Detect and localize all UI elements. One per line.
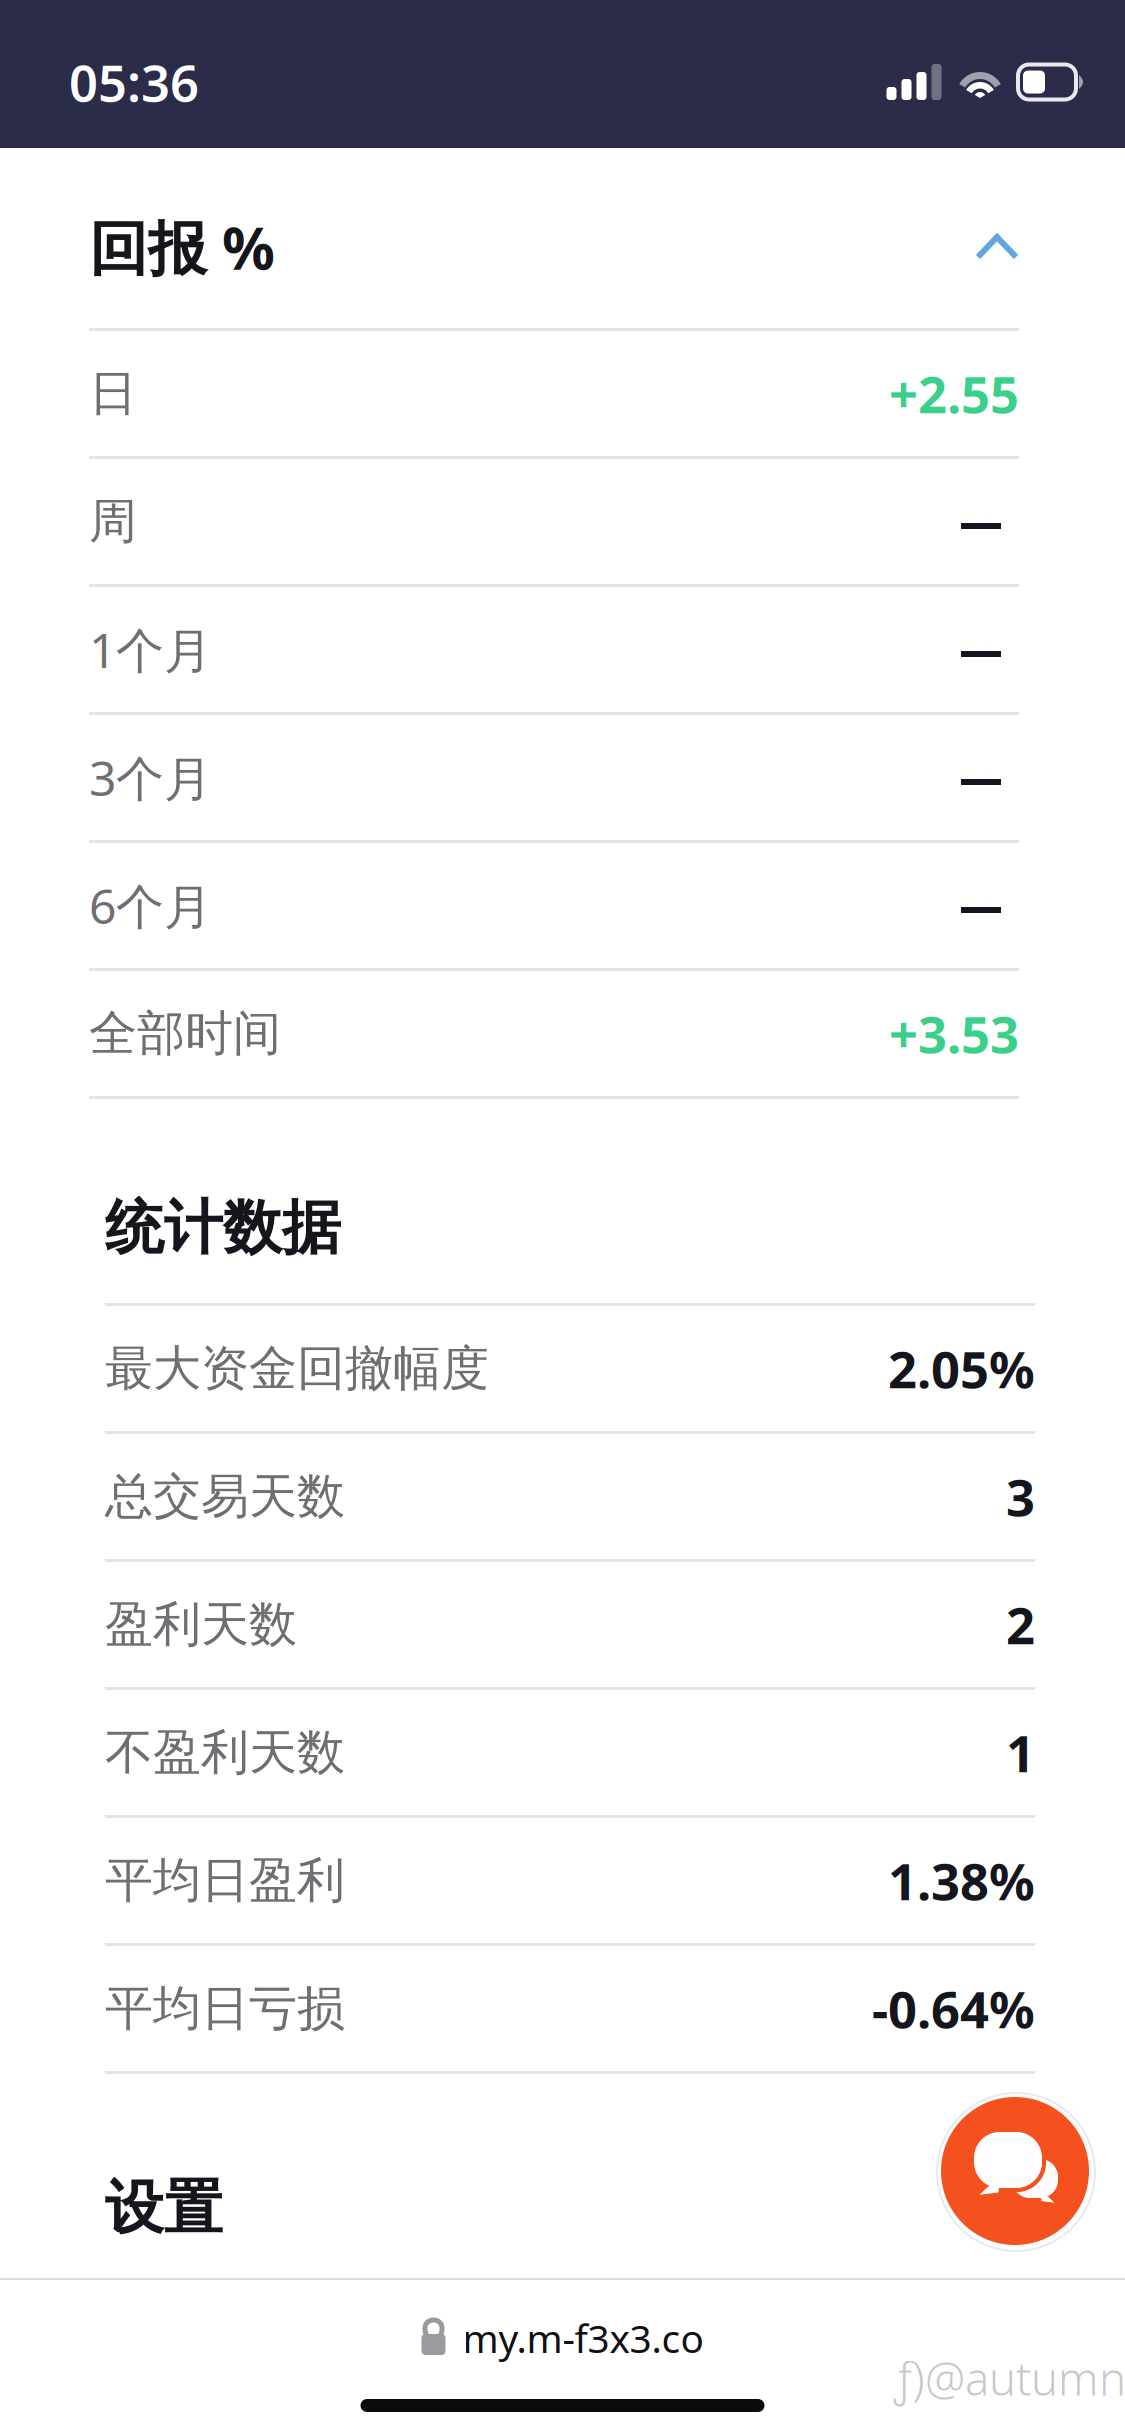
- staticText: 回报 %: [89, 208, 275, 286]
- button[interactable]: 全部时间: [89, 971, 1019, 1099]
- staticText: 不盈利天数: [105, 1723, 345, 1782]
- staticText: 05:36: [69, 48, 199, 116]
- staticText: 3个月: [89, 746, 212, 809]
- staticText: 设置: [105, 2172, 223, 2244]
- staticText: 日: [89, 364, 137, 423]
- staticText: 1.38%: [888, 1847, 1035, 1914]
- button[interactable]: 盈利天数: [105, 1562, 1035, 1690]
- staticText: 1: [1006, 1719, 1035, 1786]
- staticText: 6个月: [89, 874, 212, 937]
- button[interactable]: 1个月: [89, 587, 1019, 715]
- staticText: 盈利天数: [105, 1595, 297, 1654]
- staticText: -0.64%: [872, 1975, 1035, 2042]
- button[interactable]: 6个月: [89, 843, 1019, 971]
- button[interactable]: 最大资金回撤幅度: [105, 1306, 1035, 1434]
- staticText: 总交易天数: [105, 1467, 345, 1526]
- button[interactable]: 日: [89, 331, 1019, 459]
- staticText: my.m-f3x3.co: [462, 2312, 703, 2364]
- button[interactable]: 3个月: [89, 715, 1019, 843]
- button[interactable]: Chat support: [936, 2092, 1094, 2250]
- button[interactable]: 周: [89, 459, 1019, 587]
- button[interactable]: 平均日盈利: [105, 1818, 1035, 1946]
- staticText: ƒ)@autumn: [894, 2348, 1125, 2408]
- staticText: 周: [89, 492, 137, 551]
- staticText: 全部时间: [89, 1004, 281, 1063]
- staticText: 3: [1006, 1463, 1035, 1530]
- staticText: 平均日盈利: [105, 1851, 345, 1910]
- staticText: +3.53: [889, 1000, 1019, 1067]
- button[interactable]: my.m-f3x3.co: [0, 2314, 1125, 2362]
- staticText: 平均日亏损: [105, 1979, 345, 2038]
- staticText: 最大资金回撤幅度: [105, 1339, 489, 1398]
- button[interactable]: 总交易天数: [105, 1434, 1035, 1562]
- staticText: 2: [1006, 1591, 1035, 1658]
- button[interactable]: 平均日亏损: [105, 1946, 1035, 2074]
- staticText: 2.05%: [888, 1335, 1035, 1402]
- staticText: 1个月: [89, 618, 212, 681]
- button[interactable]: 不盈利天数: [105, 1690, 1035, 1818]
- button[interactable]: 回报 %: [89, 187, 1019, 307]
- staticText: +2.55: [889, 360, 1019, 427]
- staticText: 统计数据: [105, 1192, 341, 1264]
